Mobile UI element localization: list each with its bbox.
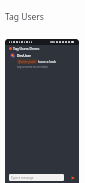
staticText: Type a message bbox=[11, 176, 34, 180]
button[interactable]: Type a message bbox=[9, 174, 64, 181]
staticText: Tag Users Demo bbox=[13, 46, 40, 51]
button[interactable]: Send bbox=[70, 175, 76, 181]
staticText: DevUser bbox=[17, 53, 31, 58]
staticText: @everyone bbox=[18, 59, 36, 64]
staticText: tap a name to mention bbox=[17, 65, 49, 69]
staticText: Tag Users bbox=[5, 11, 44, 23]
button[interactable]: Tag Users Demo bbox=[5, 45, 79, 51]
staticText: have a look bbox=[38, 59, 57, 64]
